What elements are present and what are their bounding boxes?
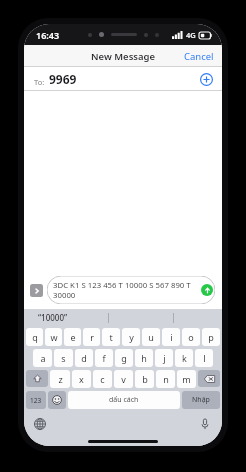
staticText: “10000” <box>38 312 68 323</box>
staticText: o <box>188 331 194 343</box>
staticText: z <box>58 373 63 385</box>
staticText: s <box>61 352 66 364</box>
button[interactable]: Emoji <box>48 391 66 409</box>
button[interactable]: 123 <box>26 391 46 409</box>
staticText: f <box>102 352 106 364</box>
staticText: c <box>100 373 105 385</box>
staticText: d <box>81 352 87 364</box>
button[interactable]: t <box>102 328 120 346</box>
button[interactable]: b <box>135 370 154 388</box>
button[interactable]: l <box>195 349 213 367</box>
staticText: dấu cách <box>109 395 139 405</box>
button[interactable]: Dictation <box>198 417 212 431</box>
button[interactable]: o <box>182 328 200 346</box>
staticText: y <box>129 331 134 343</box>
staticText: w <box>50 331 58 343</box>
staticText: b <box>142 373 148 385</box>
staticText: e <box>70 331 76 343</box>
button[interactable]: w <box>45 328 62 346</box>
button[interactable]: p <box>202 328 220 346</box>
staticText: r <box>90 331 94 343</box>
staticText: t <box>109 331 113 343</box>
staticText: New Message <box>91 50 156 63</box>
button[interactable]: x <box>72 370 91 388</box>
button[interactable]: j <box>155 349 173 367</box>
staticText: h <box>141 352 147 364</box>
staticText: a <box>40 352 46 364</box>
button[interactable]: Cancel <box>176 46 222 67</box>
staticText: q <box>32 331 38 343</box>
button[interactable]: v <box>114 370 133 388</box>
staticText: l <box>203 352 206 364</box>
staticText: 16:43 <box>36 29 60 41</box>
staticText: m <box>182 373 191 385</box>
button[interactable]: g <box>115 349 133 367</box>
staticText: To: <box>34 77 45 87</box>
button[interactable]: Change keyboard <box>33 417 47 431</box>
button[interactable]: r <box>83 328 100 346</box>
staticText: 4G <box>186 30 196 40</box>
button[interactable]: n <box>156 370 175 388</box>
staticText: i <box>170 331 173 343</box>
button[interactable]: Nhập <box>182 391 220 409</box>
button[interactable]: y <box>122 328 140 346</box>
button[interactable]: 3DC K1 S 123 456 T 10000 S 567 890 T 300… <box>47 276 215 304</box>
button[interactable]: Backspace <box>198 370 220 387</box>
staticText: p <box>208 331 214 343</box>
staticText: k <box>182 352 187 364</box>
staticText: 9969 <box>49 71 77 87</box>
button[interactable]: d <box>75 349 93 367</box>
button[interactable]: i <box>162 328 180 346</box>
staticText: x <box>79 373 84 385</box>
button[interactable]: h <box>135 349 153 367</box>
button[interactable]: z <box>50 370 70 388</box>
button[interactable]: m <box>177 370 196 388</box>
staticText: 123 <box>30 396 42 405</box>
button[interactable]: Send <box>201 284 213 296</box>
staticText: g <box>121 352 127 364</box>
staticText: v <box>121 373 126 385</box>
button[interactable]: Expand apps <box>30 284 43 297</box>
button[interactable]: Add contact <box>198 71 214 87</box>
button[interactable]: dấu cách <box>68 391 180 409</box>
button[interactable]: a <box>33 349 52 367</box>
staticText: j <box>163 352 166 364</box>
button[interactable]: Shift <box>26 370 48 387</box>
button[interactable]: f <box>95 349 113 367</box>
button[interactable]: u <box>142 328 160 346</box>
button[interactable]: s <box>54 349 73 367</box>
staticText: n <box>163 373 169 385</box>
button[interactable]: c <box>93 370 112 388</box>
button[interactable]: q <box>26 328 43 346</box>
button[interactable]: e <box>64 328 81 346</box>
staticText: Nhập <box>192 395 210 405</box>
button[interactable]: k <box>175 349 193 367</box>
staticText: u <box>148 331 154 343</box>
staticText: 3DC K1 S 123 456 T 10000 S 567 890 T 300… <box>53 280 199 300</box>
staticText: Cancel <box>184 50 214 63</box>
